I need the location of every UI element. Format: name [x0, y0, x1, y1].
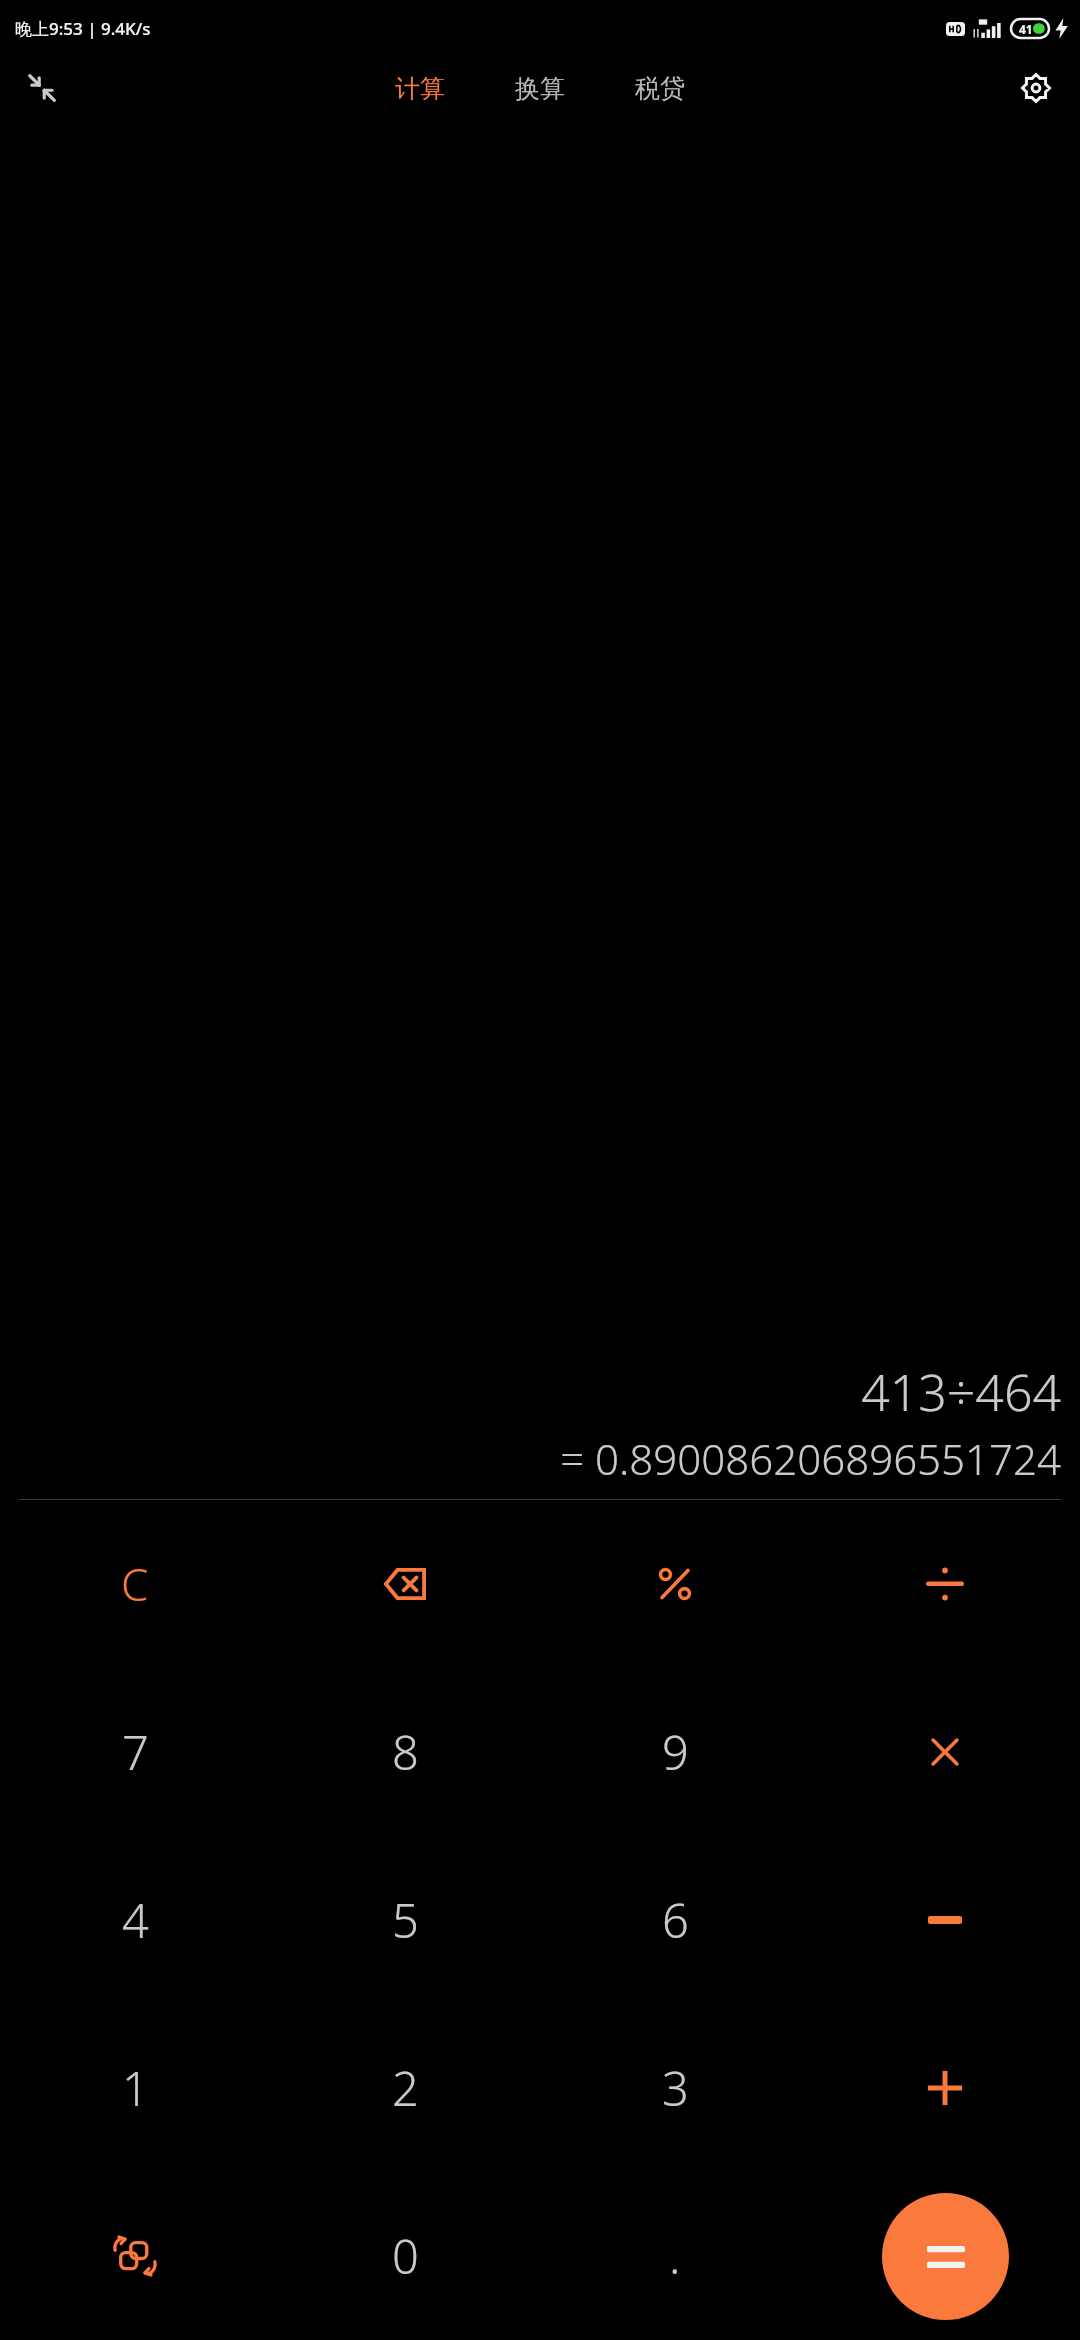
- staticText: .: [669, 2224, 681, 2288]
- staticText: 2: [392, 2056, 419, 2120]
- button[interactable]: 换算: [509, 67, 571, 110]
- button[interactable]: Minus: [810, 1836, 1080, 2004]
- button[interactable]: Divide: [810, 1500, 1080, 1668]
- button[interactable]: Collapse: [10, 56, 74, 120]
- staticText: 税贷: [635, 73, 685, 104]
- button[interactable]: Plus: [810, 2004, 1080, 2172]
- staticText: 1: [122, 2056, 149, 2120]
- button[interactable]: Settings: [1004, 56, 1068, 120]
- button[interactable]: 3: [540, 2004, 810, 2172]
- staticText: 41: [1019, 21, 1033, 37]
- staticText: 晚上9:53 | 9.4K/s: [15, 17, 151, 40]
- button[interactable]: 税贷: [629, 67, 691, 110]
- staticText: 9: [662, 1720, 689, 1784]
- button[interactable]: Backspace: [270, 1500, 540, 1668]
- button[interactable]: 6: [540, 1836, 810, 2004]
- staticText: = 0.890086206896551724: [560, 1430, 1061, 1487]
- staticText: 0: [392, 2224, 419, 2288]
- staticText: 6: [662, 1888, 689, 1952]
- staticText: 换算: [515, 73, 565, 104]
- staticText: 3: [662, 2056, 689, 2120]
- staticText: 计算: [395, 73, 445, 104]
- button[interactable]: 9: [540, 1668, 810, 1836]
- button[interactable]: Equals: [810, 2172, 1080, 2340]
- button[interactable]: Percent: [540, 1500, 810, 1668]
- button[interactable]: 4: [0, 1836, 270, 2004]
- staticText: 7: [122, 1720, 149, 1784]
- button[interactable]: 8: [270, 1668, 540, 1836]
- button[interactable]: C: [0, 1500, 270, 1668]
- button[interactable]: Convert: [0, 2172, 270, 2340]
- button[interactable]: 0: [270, 2172, 540, 2340]
- staticText: C: [121, 1554, 149, 1614]
- button[interactable]: 1: [0, 2004, 270, 2172]
- button[interactable]: .: [540, 2172, 810, 2340]
- button[interactable]: 计算: [389, 67, 451, 110]
- staticText: 413÷464: [861, 1358, 1061, 1426]
- button[interactable]: 7: [0, 1668, 270, 1836]
- button[interactable]: 5: [270, 1836, 540, 2004]
- staticText: 5: [392, 1888, 419, 1952]
- staticText: 4: [122, 1888, 149, 1952]
- button[interactable]: Multiply: [810, 1668, 1080, 1836]
- staticText: 8: [392, 1720, 419, 1784]
- button[interactable]: 2: [270, 2004, 540, 2172]
